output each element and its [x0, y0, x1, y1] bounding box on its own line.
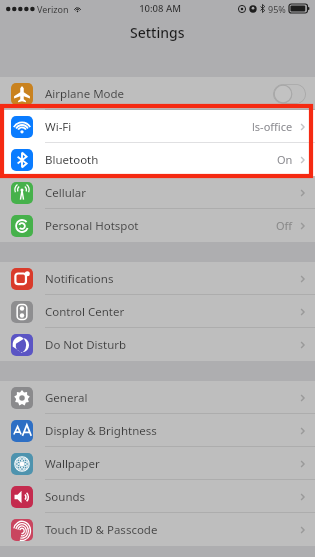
button[interactable]: Notifications — [0, 262, 315, 295]
staticText: 10:08 AM — [139, 2, 181, 15]
staticText: Settings — [130, 23, 185, 42]
staticText: Touch ID & Passcode — [45, 522, 158, 538]
button[interactable]: Wallpaper — [0, 447, 315, 480]
button[interactable]: Wi-Fi — [0, 110, 315, 143]
staticText: 95% — [268, 3, 286, 15]
staticText: General — [45, 390, 88, 406]
button[interactable]: Airplane Mode toggle — [273, 84, 306, 104]
button[interactable]: Sounds — [0, 480, 315, 513]
staticText: Verizon — [37, 3, 69, 15]
staticText: Personal Hotspot — [45, 218, 139, 234]
button[interactable]: Control Center — [0, 295, 315, 328]
button[interactable]: Bluetooth — [0, 143, 315, 176]
staticText: Bluetooth — [45, 152, 99, 168]
button[interactable]: Airplane Mode — [0, 77, 315, 110]
button[interactable]: General — [0, 381, 315, 414]
staticText: Wallpaper — [45, 456, 100, 472]
staticText: Do Not Disturb — [45, 337, 127, 353]
staticText: Sounds — [45, 489, 86, 505]
button[interactable]: Cellular — [0, 176, 315, 209]
staticText: Off — [276, 218, 293, 233]
button[interactable]: Do Not Disturb — [0, 328, 315, 361]
staticText: Wi-Fi — [45, 119, 72, 135]
staticText: Cellular — [45, 185, 86, 201]
button[interactable]: Personal Hotspot — [0, 209, 315, 242]
staticText: ls-office — [252, 119, 293, 134]
button[interactable]: Display & Brightness — [0, 414, 315, 447]
staticText: Display & Brightness — [45, 423, 157, 439]
staticText: Control Center — [45, 304, 125, 320]
staticText: Notifications — [45, 271, 114, 287]
staticText: Airplane Mode — [45, 86, 125, 102]
button[interactable]: Touch ID & Passcode — [0, 513, 315, 546]
staticText: On — [277, 152, 293, 167]
